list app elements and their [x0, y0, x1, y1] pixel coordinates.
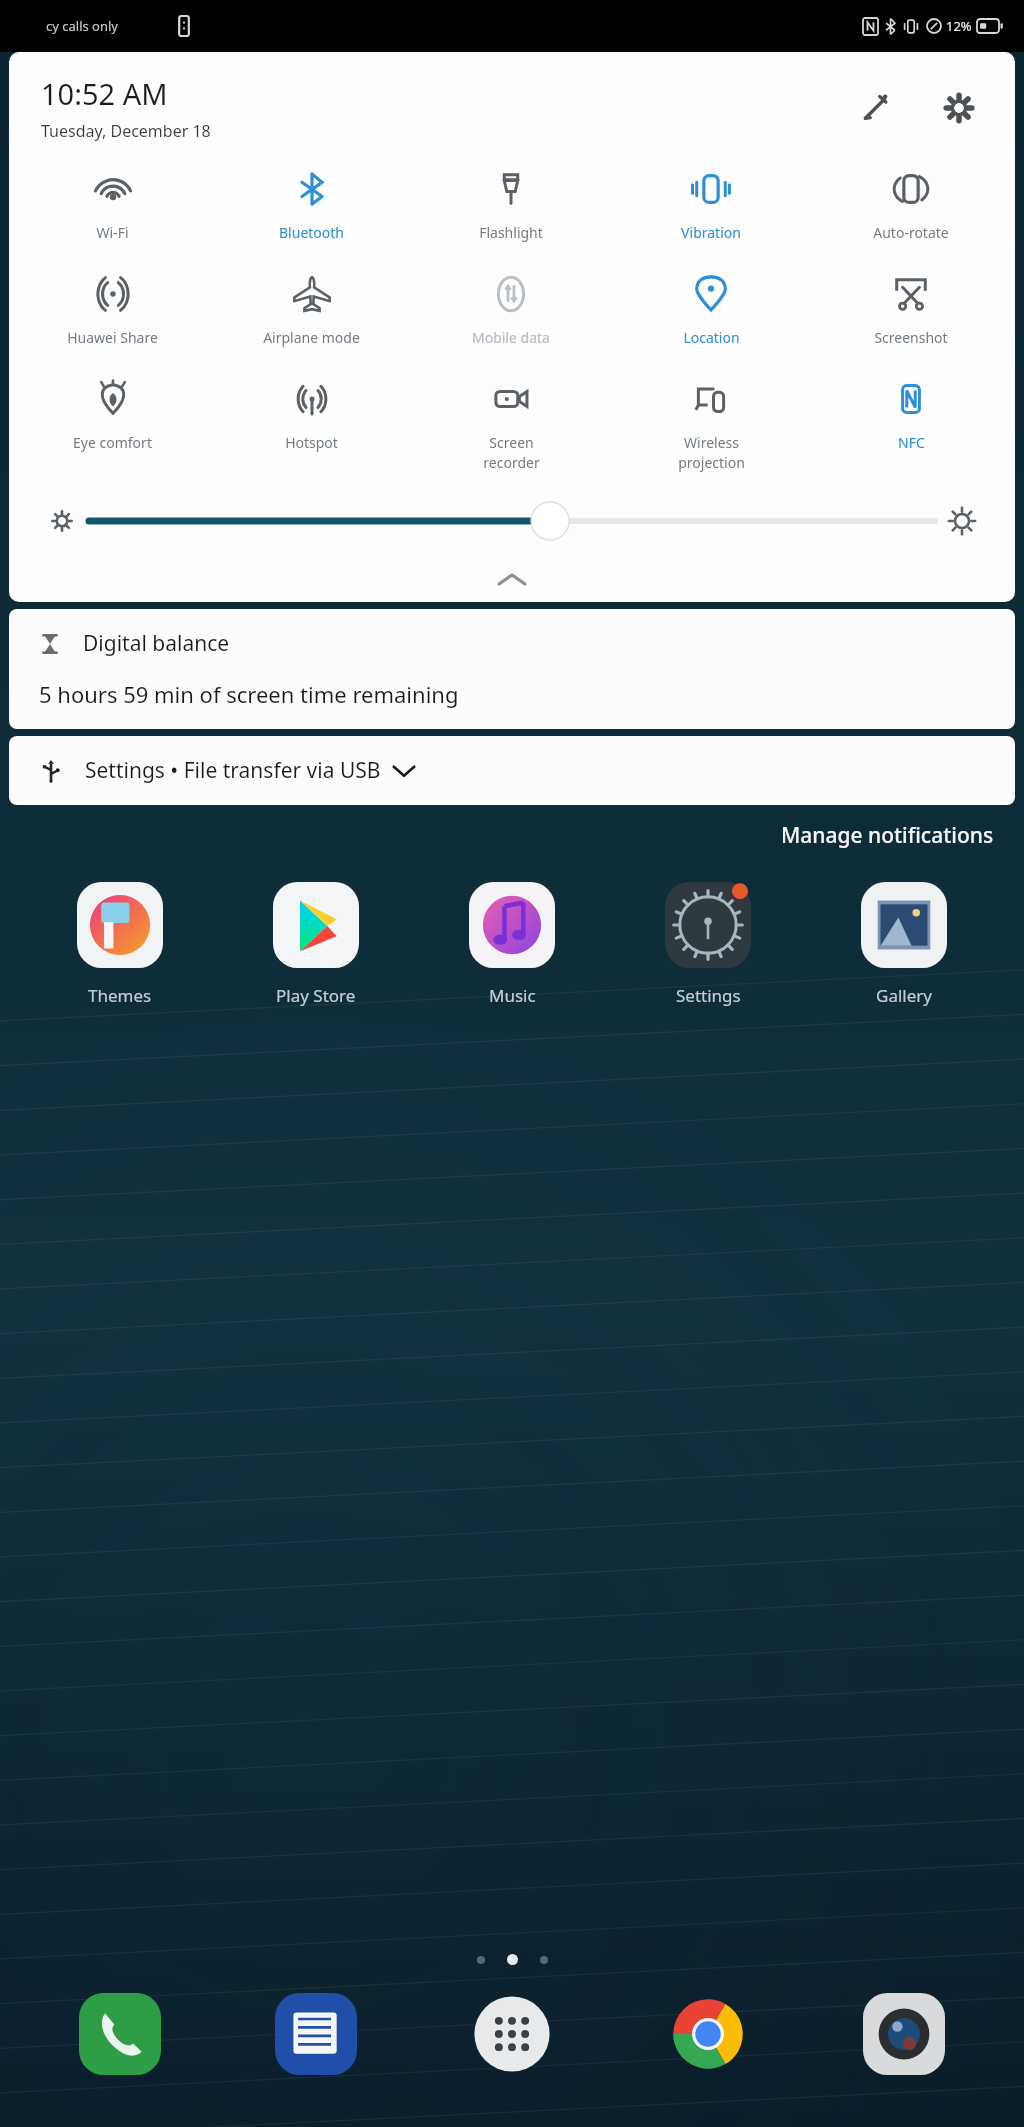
- button[interactable]: Eye comfort: [13, 376, 212, 454]
- button[interactable]: Location: [611, 271, 811, 349]
- button[interactable]: Phone: [22, 1987, 218, 2081]
- button[interactable]: Settings • File transfer via USB: [9, 736, 1015, 805]
- staticText: Airplane mode: [263, 328, 360, 347]
- staticText: Gallery: [876, 984, 932, 1007]
- staticText: Auto-rotate: [873, 223, 949, 242]
- staticText: Digital balance: [83, 629, 230, 658]
- button[interactable]: Screenshot: [811, 271, 1011, 349]
- button[interactable]: App drawer: [414, 1987, 610, 2081]
- button[interactable]: Mobile data: [411, 271, 611, 349]
- staticText: cy calls only: [46, 17, 118, 35]
- button[interactable]: Flashlight: [411, 166, 611, 244]
- staticText: Huawei Share: [67, 328, 158, 347]
- staticText: Hotspot: [285, 433, 338, 452]
- staticText: Play Store: [276, 984, 356, 1007]
- staticText: 12%: [946, 17, 972, 35]
- button[interactable]: Airplane mode: [212, 271, 411, 349]
- button[interactable]: Hotspot: [212, 376, 411, 454]
- button[interactable]: Minimum brightness: [35, 494, 89, 548]
- staticText: Tuesday, December 18: [41, 120, 211, 142]
- button[interactable]: NFC: [811, 376, 1011, 454]
- button[interactable]: Wireless projection: [611, 376, 811, 474]
- button[interactable]: Bluetooth: [212, 166, 411, 244]
- staticText: Mobile data: [472, 328, 550, 347]
- staticText: Wi-Fi: [96, 223, 129, 242]
- button[interactable]: Edit: [847, 80, 903, 136]
- staticText: Vibration: [681, 223, 741, 242]
- button[interactable]: Messages: [218, 1987, 414, 2081]
- staticText: 5 hours 59 min of screen time remaining: [39, 679, 459, 709]
- button[interactable]: [89, 501, 935, 541]
- button[interactable]: Gallery: [806, 878, 1002, 1007]
- staticText: Themes: [88, 984, 152, 1007]
- button[interactable]: Vibration: [611, 166, 811, 244]
- button[interactable]: Huawei Share: [13, 271, 212, 349]
- button[interactable]: Themes: [22, 878, 218, 1007]
- staticText: Screenshot: [874, 328, 948, 347]
- staticText: Flashlight: [479, 223, 543, 242]
- button[interactable]: Screen recorder: [411, 376, 611, 474]
- button[interactable]: Maximum brightness: [935, 494, 989, 548]
- button[interactable]: Digital balance: [9, 609, 1015, 729]
- button[interactable]: Collapse: [9, 564, 1015, 594]
- button[interactable]: Settings: [931, 80, 987, 136]
- staticText: Settings • File transfer via USB: [85, 756, 381, 785]
- staticText: Manage notifications: [781, 821, 994, 850]
- button[interactable]: Auto-rotate: [811, 166, 1011, 244]
- button[interactable]: Wi-Fi: [13, 166, 212, 244]
- staticText: NFC: [898, 433, 925, 452]
- staticText: Eye comfort: [73, 433, 152, 452]
- button[interactable]: Music: [414, 878, 610, 1007]
- staticText: Settings: [676, 984, 741, 1007]
- button[interactable]: Chrome: [610, 1987, 806, 2081]
- button[interactable]: Settings: [610, 878, 806, 1007]
- staticText: 10:52 AM: [41, 74, 168, 113]
- staticText: Music: [489, 984, 536, 1007]
- staticText: Screen recorder: [483, 433, 540, 472]
- button[interactable]: Manage notifications: [751, 815, 1024, 856]
- staticText: Wireless projection: [678, 433, 745, 472]
- staticText: Bluetooth: [279, 223, 344, 242]
- staticText: Location: [683, 328, 740, 347]
- button[interactable]: Play Store: [218, 878, 414, 1007]
- button[interactable]: Camera: [806, 1987, 1002, 2081]
